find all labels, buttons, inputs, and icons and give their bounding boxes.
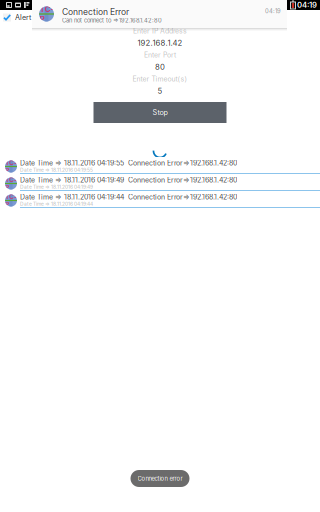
staticText: Stop [152, 108, 167, 117]
staticText: 80 [155, 62, 165, 72]
button[interactable]: TCP [0, 157, 320, 174]
button[interactable]: TCP [32, 0, 287, 28]
button[interactable]: Connection error [130, 470, 189, 487]
staticText: TCP [5, 176, 17, 191]
staticText: Date Time => 18.11.2016 04:19:49 [20, 184, 93, 190]
staticText: Can not connect to =>192.168.1.42:80 [62, 17, 162, 24]
staticText: Date Time => 18.11.2016 04:19:55 Connect… [20, 159, 237, 167]
staticText: Date Time => 18.11.2016 04:19:55 [20, 167, 93, 173]
staticText: TCP [39, 4, 53, 24]
staticText: Enter Timeout(s) [132, 75, 187, 83]
staticText: Date Time => 18.11.2016 04:19:49 Connect… [20, 176, 237, 184]
button[interactable]: TCP [0, 174, 320, 191]
staticText: Connection error [137, 475, 182, 482]
button[interactable]: TCP [0, 191, 320, 208]
staticText: 5 [157, 86, 162, 96]
staticText: Date Time => 18.11.2016 04:19:44 Connect… [20, 193, 237, 201]
staticText: Enter IP Address [133, 27, 187, 35]
staticText: Enter Port [144, 51, 176, 59]
button[interactable]: Alert When Error [0, 10, 320, 25]
staticText: TCP [5, 159, 17, 174]
staticText: Alert When Error [15, 13, 71, 22]
staticText: 04:19 [265, 7, 281, 15]
staticText: TCP [5, 193, 17, 208]
staticText: 192.168.1.42 [137, 38, 182, 48]
button[interactable]: Stop [93, 102, 226, 123]
staticText: Date Time => 18.11.2016 04:19:44 [20, 201, 93, 207]
staticText: Connection Error [62, 7, 129, 17]
staticText: 04:19 [297, 0, 317, 10]
